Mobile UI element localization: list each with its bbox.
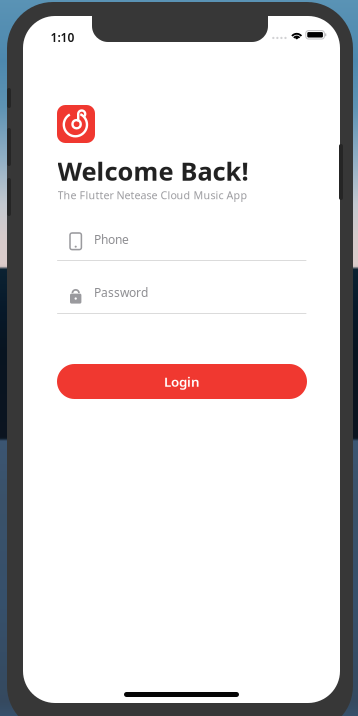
button[interactable]: Password	[57, 278, 307, 314]
staticText: Password	[94, 284, 148, 300]
button[interactable]: Phone	[57, 225, 307, 261]
staticText: Welcome Back!	[57, 154, 248, 188]
staticText: Login	[164, 373, 200, 390]
staticText: 1:10	[50, 29, 74, 45]
staticText: Phone	[94, 231, 129, 247]
staticText: The Flutter Netease Cloud Music App	[57, 188, 247, 202]
button[interactable]: Login	[57, 364, 307, 399]
